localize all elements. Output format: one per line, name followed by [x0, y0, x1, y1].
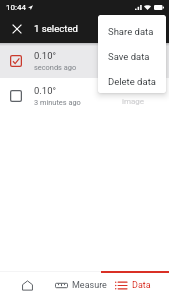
button[interactable]: Close selection [0, 14, 34, 43]
staticText: 10:44 [6, 3, 26, 12]
staticText: 1 selected [34, 23, 78, 34]
staticText: Data [132, 280, 151, 291]
button[interactable]: Data [101, 271, 169, 300]
staticText: 0.10° [34, 50, 57, 61]
button[interactable]: 0.10° [0, 43, 169, 78]
button[interactable]: 0.10° [0, 78, 169, 113]
staticText: Share data [108, 26, 154, 37]
staticText: seconds ago [34, 63, 77, 72]
staticText: Measure [72, 280, 101, 291]
staticText: image [122, 97, 145, 106]
button[interactable]: Delete data [98, 69, 166, 93]
button[interactable]: Share data [98, 19, 166, 44]
button[interactable]: Home [0, 271, 55, 300]
staticText: 0.10° [34, 85, 57, 96]
button[interactable]: Measure [55, 271, 101, 300]
staticText: 3 minutes ago [34, 98, 81, 107]
staticText: Save data [108, 51, 150, 62]
button[interactable]: Save data [98, 44, 166, 69]
staticText: Delete data [108, 76, 156, 87]
